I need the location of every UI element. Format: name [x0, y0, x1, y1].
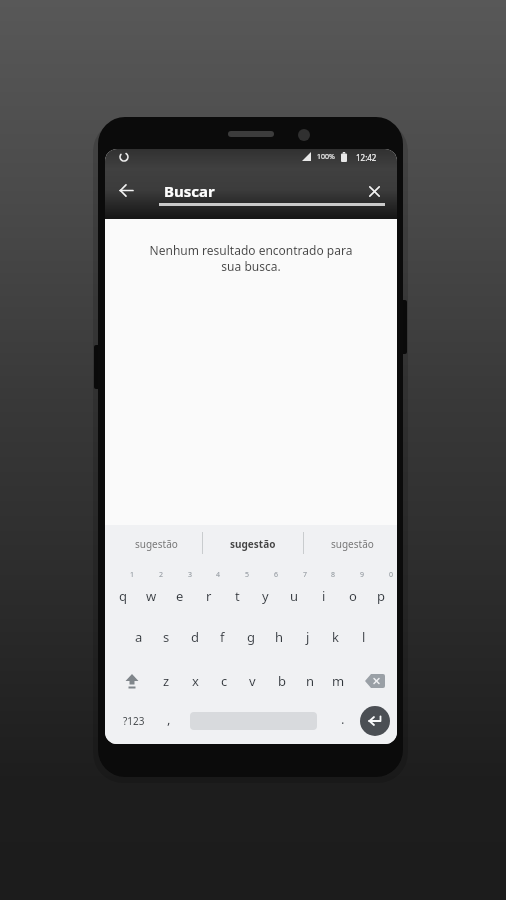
staticText: v [249, 672, 256, 690]
button[interactable] [363, 180, 385, 202]
button[interactable]: q [109, 584, 136, 608]
staticText: e [176, 587, 184, 605]
button[interactable]: h [266, 625, 293, 649]
button[interactable]: c [211, 669, 238, 693]
staticText: i [322, 587, 326, 605]
button[interactable] [111, 175, 141, 205]
button[interactable]: p [367, 584, 394, 608]
staticText: u [290, 587, 299, 605]
button[interactable]: g [237, 625, 264, 649]
staticText: 4 [216, 570, 221, 580]
staticText: q [119, 587, 127, 605]
staticText: Nenhum resultado encontrado para sua bus… [105, 242, 397, 274]
button[interactable]: s [153, 625, 180, 649]
staticText: 2 [159, 570, 164, 580]
button[interactable]: t [224, 584, 251, 608]
staticText: o [349, 587, 357, 605]
button[interactable]: x [182, 669, 209, 693]
button[interactable]: f [209, 625, 236, 649]
button[interactable]: ?123 [115, 712, 153, 729]
staticText: 3 [188, 570, 193, 580]
button[interactable]: j [294, 625, 321, 649]
staticText: sugestão [135, 537, 178, 551]
button[interactable]: sugestão [312, 534, 392, 554]
staticText: 5 [245, 570, 250, 580]
staticText: 9 [360, 570, 365, 580]
staticText: 12:42 [356, 152, 377, 163]
staticText: 8 [331, 570, 336, 580]
staticText: s [163, 628, 170, 646]
button[interactable]: w [138, 584, 165, 608]
button[interactable]: i [310, 584, 337, 608]
staticText: l [362, 628, 366, 646]
button[interactable]: , [155, 707, 182, 731]
button[interactable]: o [339, 584, 366, 608]
staticText: y [262, 587, 269, 605]
staticText: , [167, 710, 171, 728]
staticText: t [235, 587, 240, 605]
button[interactable]: k [322, 625, 349, 649]
staticText: x [192, 672, 199, 690]
button[interactable]: m [325, 669, 352, 693]
staticText: 6 [274, 570, 279, 580]
staticText: h [275, 628, 284, 646]
staticText: g [247, 628, 255, 646]
staticText: 7 [303, 570, 308, 580]
button[interactable]: d [181, 625, 208, 649]
button[interactable] [118, 669, 146, 693]
button[interactable]: b [268, 669, 295, 693]
staticText: . [341, 710, 345, 728]
button[interactable]: . [329, 707, 356, 731]
staticText: sugestão [230, 537, 276, 551]
button[interactable]: sugestão [116, 534, 196, 554]
staticText: p [377, 587, 385, 605]
staticText: m [332, 672, 345, 690]
staticText: c [221, 672, 228, 690]
button[interactable]: v [239, 669, 266, 693]
staticText: n [306, 672, 315, 690]
staticText: 1 [130, 570, 135, 580]
staticText: 0 [389, 570, 394, 580]
staticText: a [135, 628, 143, 646]
button[interactable]: z [153, 669, 180, 693]
button[interactable] [360, 706, 390, 736]
staticText: d [191, 628, 199, 646]
button[interactable]: sugestão [213, 534, 293, 554]
button[interactable]: u [281, 584, 308, 608]
staticText: r [206, 587, 212, 605]
button[interactable]: n [297, 669, 324, 693]
button[interactable]: r [195, 584, 222, 608]
staticText: sugestão [331, 537, 374, 551]
staticText: k [332, 628, 339, 646]
staticText: ?123 [123, 714, 145, 728]
staticText: f [220, 628, 225, 646]
button[interactable]: l [350, 625, 377, 649]
button[interactable] [359, 668, 390, 693]
staticText: Buscar [164, 181, 215, 201]
staticText: b [278, 672, 286, 690]
button[interactable]: y [252, 584, 279, 608]
staticText: w [146, 587, 157, 605]
staticText: j [306, 628, 310, 646]
staticText: z [163, 672, 170, 690]
staticText: 100% [317, 152, 335, 162]
button[interactable]: a [125, 625, 152, 649]
button[interactable]: e [166, 584, 193, 608]
